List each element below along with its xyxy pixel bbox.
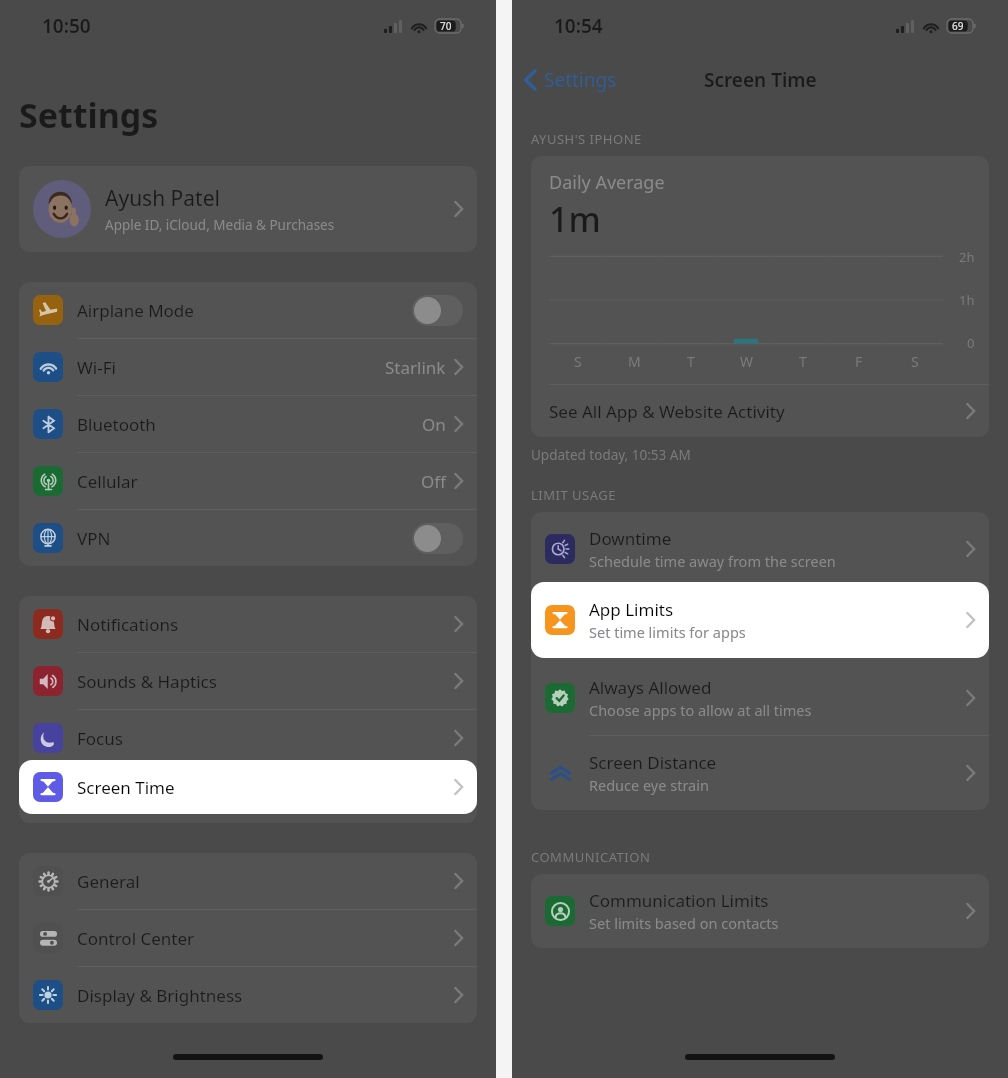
staticText: Set time limits for apps [589, 622, 746, 642]
staticText: Airplane Mode [77, 299, 194, 322]
button[interactable]: Sounds & Haptics [19, 653, 477, 710]
button[interactable]: Focus [19, 710, 477, 767]
staticText: Apple ID, iCloud, Media & Purchases [105, 216, 335, 234]
button[interactable]: General [19, 853, 477, 910]
staticText: F [855, 352, 863, 371]
staticText: Always Allowed [589, 676, 712, 699]
staticText: Cellular [77, 470, 138, 493]
staticText: VPN [77, 527, 111, 550]
staticText: Ayush Patel [105, 184, 220, 213]
staticText: Off [421, 470, 446, 493]
staticText: Updated today, 10:53 AM [531, 446, 691, 464]
staticText: Downtime [589, 527, 672, 550]
staticText: Schedule time away from the screen [589, 551, 836, 571]
staticText: Notifications [77, 613, 179, 636]
staticText: Starlink [385, 356, 446, 379]
staticText: Screen Time [704, 67, 817, 93]
button[interactable]: Display & Brightness [19, 967, 477, 1023]
staticText: COMMUNICATION [531, 848, 651, 866]
button[interactable]: Notifications [19, 596, 477, 653]
button[interactable]: Screen Time [19, 760, 477, 814]
staticText: Screen Time [77, 776, 175, 799]
button[interactable]: Toggle off [412, 523, 463, 554]
button[interactable]: Screen Distance [531, 736, 989, 810]
staticText: App Limits [589, 598, 674, 621]
button[interactable]: See All App & Website Activity [531, 385, 989, 437]
staticText: Wi-Fi [77, 356, 116, 379]
staticText: T [687, 352, 695, 371]
staticText: Control Center [77, 927, 195, 950]
staticText: S [574, 352, 582, 371]
staticText: 10:50 [42, 13, 91, 39]
staticText: Settings [19, 92, 159, 138]
staticText: AYUSH'S IPHONE [531, 130, 642, 148]
staticText: 69 [952, 19, 964, 33]
button[interactable]: Ayush Patel [19, 166, 477, 252]
staticText: 1m [549, 196, 601, 242]
staticText: Focus [77, 727, 123, 750]
staticText: M [628, 352, 641, 371]
staticText: Choose apps to allow at all times [589, 700, 812, 720]
button[interactable]: Toggle off [412, 295, 463, 326]
button[interactable]: Downtime [531, 512, 989, 587]
staticText: Display & Brightness [77, 984, 243, 1007]
button[interactable]: App Limits [531, 582, 989, 658]
staticText: Daily Average [549, 170, 665, 195]
staticText: W [740, 352, 754, 371]
staticText: Set limits based on contacts [589, 913, 779, 933]
staticText: LIMIT USAGE [531, 486, 616, 504]
button[interactable]: VPN [19, 510, 477, 566]
button[interactable]: Control Center [19, 910, 477, 967]
button[interactable]: Wi-Fi [19, 339, 477, 396]
staticText: 2h [959, 248, 975, 266]
staticText: Reduce eye strain [589, 775, 709, 795]
staticText: See All App & Website Activity [549, 400, 785, 423]
button[interactable]: Communication Limits [531, 874, 989, 948]
button[interactable]: Settings [512, 61, 627, 99]
staticText: General [77, 870, 140, 893]
staticText: Sounds & Haptics [77, 670, 217, 693]
staticText: Settings [544, 67, 617, 93]
staticText: T [799, 352, 807, 371]
staticText: S [911, 352, 919, 371]
staticText: 70 [440, 19, 452, 33]
staticText: 10:54 [554, 13, 603, 39]
staticText: Bluetooth [77, 413, 156, 436]
button[interactable]: Always Allowed [531, 661, 989, 736]
staticText: On [422, 413, 446, 436]
staticText: 0 [967, 334, 975, 352]
staticText: 1h [959, 291, 975, 309]
staticText: Screen Distance [589, 751, 717, 774]
button[interactable]: Bluetooth [19, 396, 477, 453]
button[interactable]: Cellular [19, 453, 477, 510]
staticText: Communication Limits [589, 889, 769, 912]
button[interactable]: Airplane Mode [19, 282, 477, 339]
